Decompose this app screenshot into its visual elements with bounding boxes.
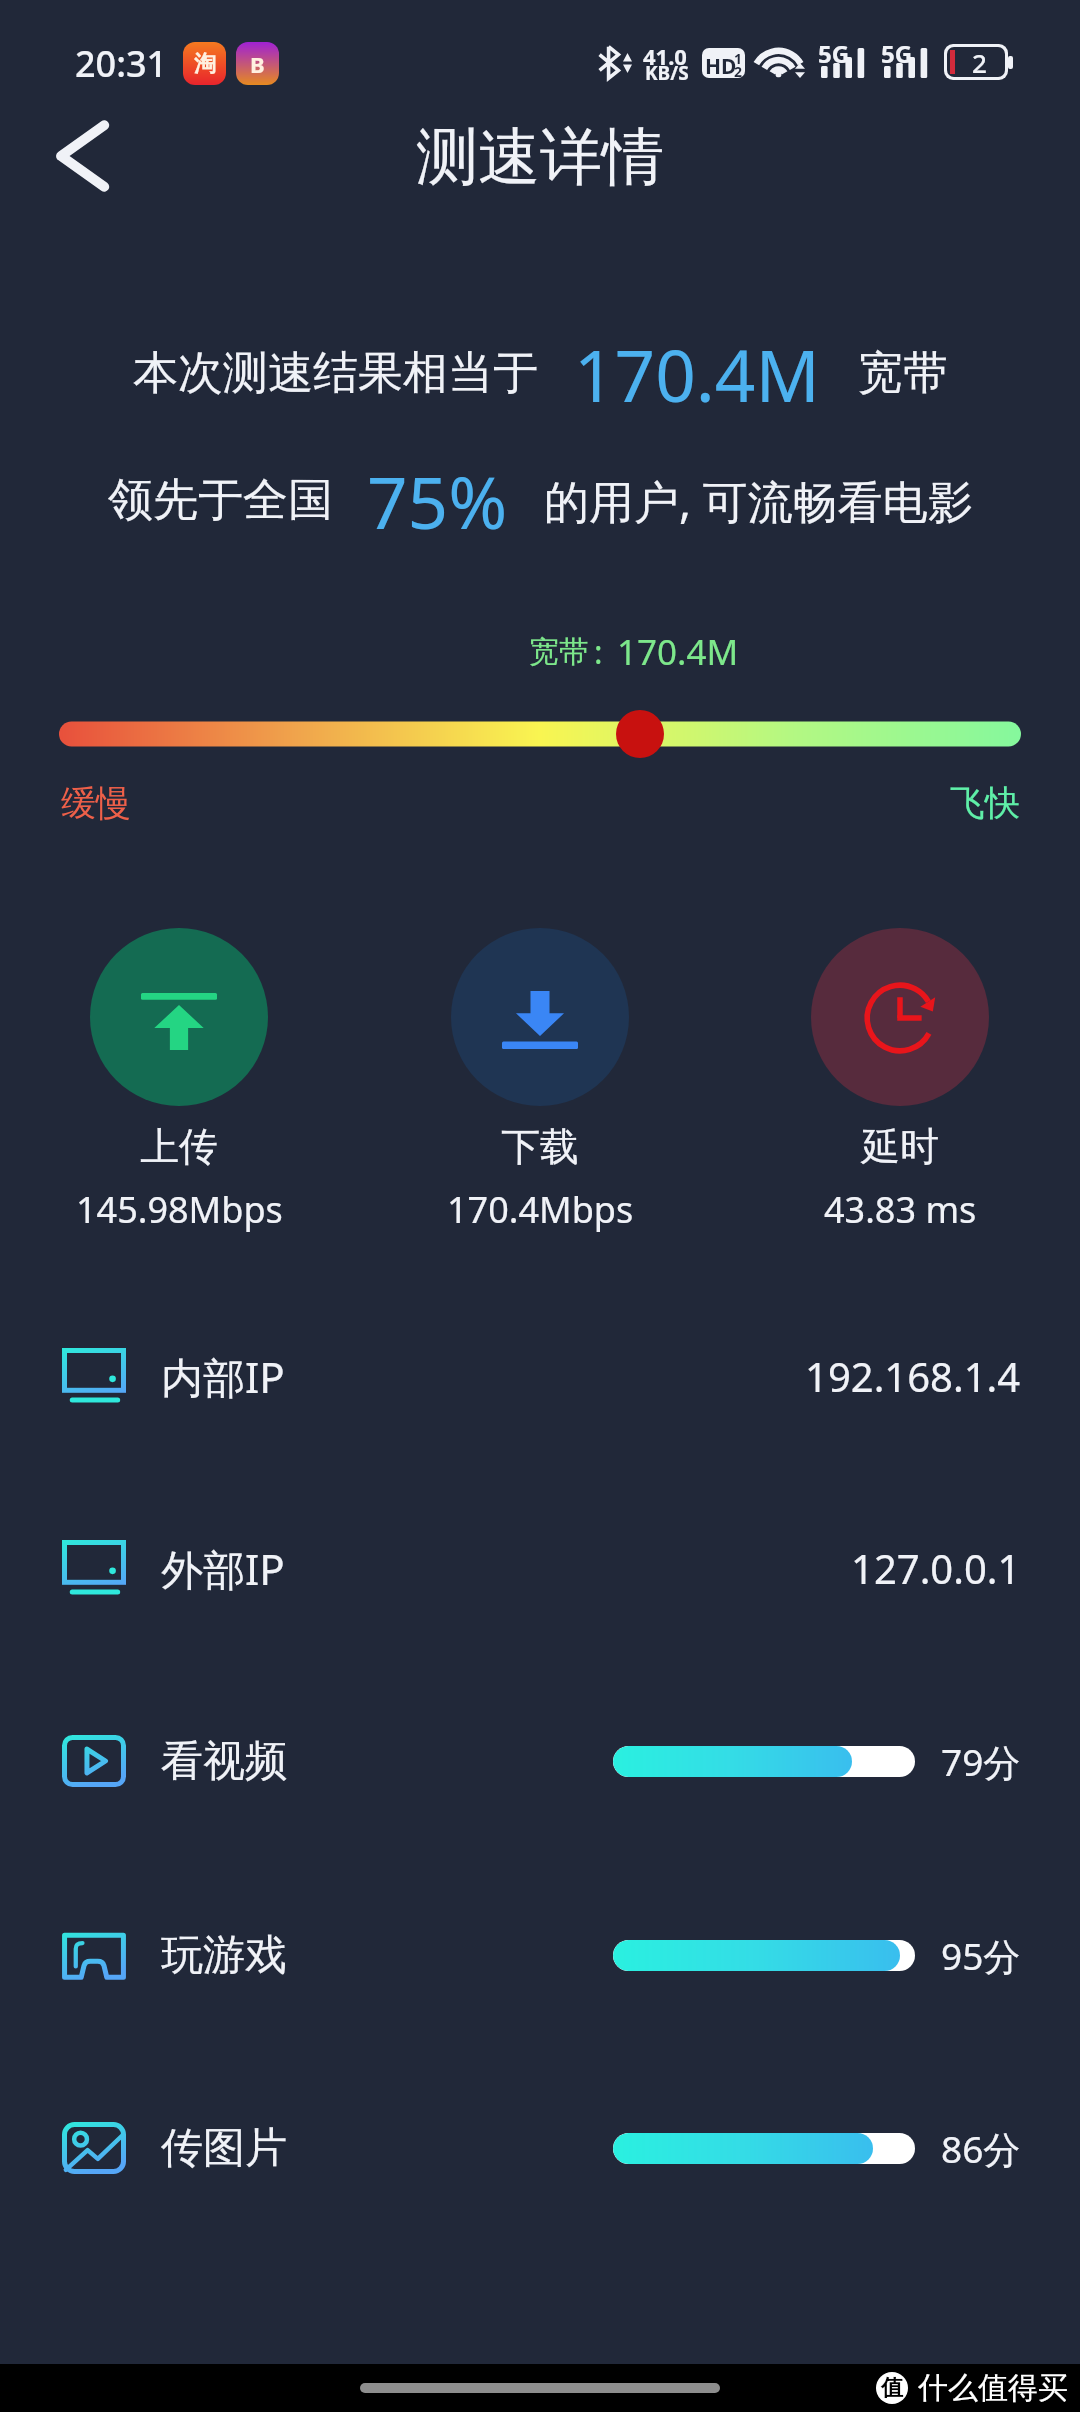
staticText: 值 [881, 2374, 903, 2402]
button[interactable]: 玩游戏 [0, 1905, 1080, 2005]
staticText: 什么值得买 [918, 2369, 1068, 2407]
button[interactable]: 内部IP [0, 1326, 1080, 1426]
staticText: KB/S [645, 60, 689, 86]
staticText: 170.4M [574, 326, 820, 423]
staticText: 外部IP [161, 1540, 285, 1597]
button[interactable]: Back [38, 108, 134, 204]
staticText: 1 [734, 49, 743, 68]
staticText: 宽带 [858, 345, 948, 402]
staticText: 2 [972, 45, 987, 80]
staticText: 192.168.1.4 [805, 1349, 1021, 1403]
staticText: 缓慢 [61, 781, 131, 825]
staticText: 86分 [941, 2123, 1021, 2174]
staticText: 170.4Mbps [447, 1185, 634, 1234]
staticText: 43.83 ms [824, 1185, 977, 1234]
staticText: HD [705, 52, 737, 78]
staticText: 145.98Mbps [76, 1185, 283, 1234]
staticText: 飞快 [950, 781, 1020, 825]
staticText: B [250, 49, 265, 79]
staticText: 2 [734, 62, 743, 78]
button[interactable]: 看视频 [0, 1711, 1080, 1811]
staticText: 75% [367, 453, 508, 550]
staticText: 95分 [941, 1930, 1021, 1981]
button[interactable]: 延时 [811, 928, 989, 1106]
staticText: 的用户, 可流畅看电影 [544, 470, 973, 531]
staticText: 宽带 [529, 633, 589, 671]
staticText: 5G [881, 37, 913, 70]
staticText: 下载 [501, 1122, 579, 1171]
staticText: 上传 [140, 1122, 218, 1171]
button[interactable]: 传图片 [0, 2098, 1080, 2198]
staticText: 看视频 [161, 1735, 287, 1788]
staticText: 170.4M [617, 628, 739, 676]
staticText: 127.0.0.1 [851, 1541, 1021, 1595]
staticText: 玩游戏 [161, 1929, 287, 1982]
staticText: 延时 [861, 1122, 939, 1171]
staticText: 传图片 [161, 2122, 287, 2175]
button[interactable]: 下载 [451, 928, 629, 1106]
staticText: 20:31 [75, 39, 168, 88]
button[interactable]: 外部IP [0, 1518, 1080, 1618]
staticText: 领先于全国 [108, 472, 333, 529]
staticText: 41.0 [643, 41, 687, 71]
staticText: 79分 [941, 1736, 1021, 1787]
staticText: 淘 [194, 50, 216, 78]
staticText: : [594, 630, 603, 674]
button[interactable]: 上传 [90, 928, 268, 1106]
staticText: 本次测速结果相当于 [133, 345, 538, 402]
staticText: 测速详情 [416, 118, 664, 196]
staticText: 内部IP [161, 1348, 285, 1405]
staticText: 5G [818, 37, 850, 70]
